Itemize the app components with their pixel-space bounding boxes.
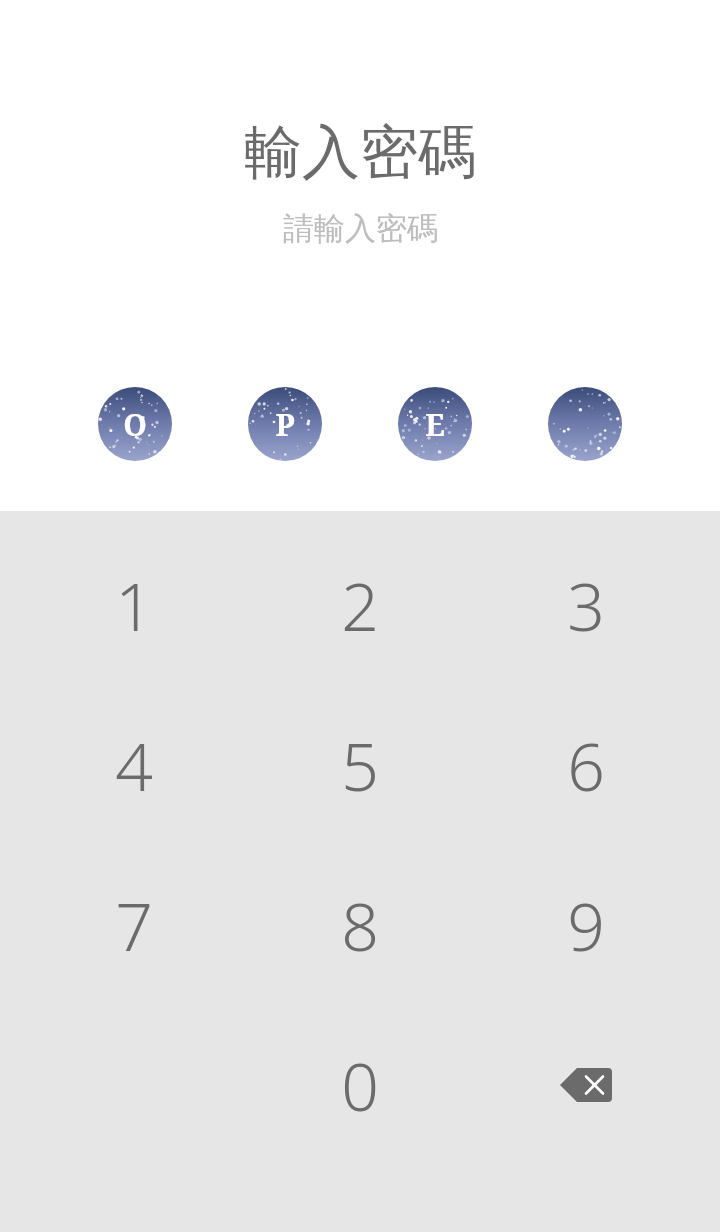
staticText: 0 <box>341 1040 379 1130</box>
staticText: 6 <box>567 720 605 810</box>
staticText: 輸入密碼 <box>244 116 476 189</box>
staticText: O <box>123 404 147 445</box>
button[interactable]: 6 <box>473 685 699 845</box>
staticText: 2 <box>341 560 379 650</box>
staticText: P <box>275 404 295 445</box>
button[interactable]: 0 <box>247 1005 473 1165</box>
staticText: 4 <box>115 720 153 810</box>
staticText: 3 <box>567 560 605 650</box>
button[interactable]: 3 <box>473 525 699 685</box>
button[interactable]: 9 <box>473 845 699 1005</box>
staticText: 1 <box>115 560 153 650</box>
staticText: 8 <box>341 880 379 970</box>
staticText: 5 <box>341 720 379 810</box>
staticText: E <box>425 404 445 445</box>
button[interactable]: 7 <box>21 845 247 1005</box>
button[interactable]: 1 <box>21 525 247 685</box>
button[interactable]: 5 <box>247 685 473 845</box>
button[interactable]: Backspace <box>473 1005 699 1165</box>
button[interactable]: 2 <box>247 525 473 685</box>
button[interactable]: 4 <box>21 685 247 845</box>
staticText: 7 <box>115 880 153 970</box>
button[interactable]: 8 <box>247 845 473 1005</box>
staticText: 請輸入密碼 <box>283 209 438 248</box>
staticText: 9 <box>567 880 605 970</box>
